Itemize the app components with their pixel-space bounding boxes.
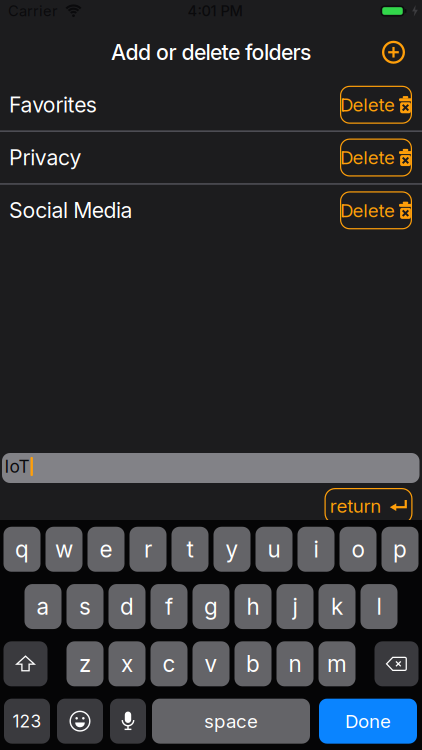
staticText: t (186, 536, 193, 563)
staticText: 4:01 PM (187, 2, 242, 20)
button[interactable]: d (108, 584, 145, 629)
button[interactable]: Delete folder (340, 139, 412, 177)
button[interactable]: n (276, 641, 313, 686)
staticText: Delete (340, 94, 395, 116)
staticText: d (120, 593, 134, 620)
button[interactable]: c (150, 641, 187, 686)
button[interactable]: u (255, 527, 292, 572)
staticText: 123 (12, 711, 41, 731)
button[interactable]: e (87, 527, 124, 572)
staticText: p (393, 536, 407, 563)
button[interactable]: v (192, 641, 229, 686)
staticText: x (121, 650, 133, 677)
button[interactable]: w (45, 527, 82, 572)
staticText: r (144, 536, 152, 563)
staticText: Social Media (9, 198, 133, 223)
staticText: n (288, 650, 301, 677)
button[interactable]: Delete character (374, 641, 418, 686)
button[interactable]: t (171, 527, 208, 572)
staticText: m (327, 650, 347, 677)
staticText: Delete (340, 146, 395, 168)
staticText: w (55, 536, 73, 563)
staticText: l (376, 593, 381, 620)
button[interactable]: a (24, 584, 61, 629)
staticText: f (165, 593, 173, 620)
staticText: y (225, 536, 238, 563)
button[interactable]: return (324, 488, 412, 524)
staticText: j (292, 593, 297, 620)
button[interactable]: k (318, 584, 355, 629)
staticText: b (246, 650, 260, 677)
staticText: h (246, 593, 259, 620)
button[interactable]: Delete folder (340, 191, 412, 229)
button[interactable]: r (129, 527, 166, 572)
staticText: return (330, 495, 381, 517)
button[interactable]: Add folder (382, 41, 405, 64)
staticText: Carrier (8, 2, 58, 20)
staticText: o (351, 536, 364, 563)
button[interactable]: x (108, 641, 145, 686)
button[interactable]: Folder name text field (2, 453, 419, 483)
button[interactable]: y (213, 527, 250, 572)
staticText: Favorites (9, 92, 97, 117)
staticText: g (204, 593, 218, 620)
button[interactable]: o (339, 527, 376, 572)
staticText: IoT (4, 456, 29, 477)
button[interactable]: g (192, 584, 229, 629)
staticText: Delete (340, 199, 395, 221)
button[interactable]: Shift (3, 641, 47, 686)
button[interactable]: p (381, 527, 418, 572)
staticText: a (36, 593, 49, 620)
staticText: Done (345, 710, 391, 732)
staticText: s (79, 593, 91, 620)
button[interactable]: m (318, 641, 355, 686)
button[interactable]: b (234, 641, 271, 686)
staticText: u (267, 536, 280, 563)
button[interactable]: s (66, 584, 103, 629)
button[interactable]: j (276, 584, 313, 629)
staticText: Add or delete folders (111, 40, 311, 65)
button[interactable]: Numbers (4, 699, 50, 744)
button[interactable]: space (152, 699, 310, 744)
staticText: i (313, 536, 318, 563)
button[interactable]: Emoji (57, 699, 103, 744)
staticText: v (204, 650, 217, 677)
button[interactable]: h (234, 584, 271, 629)
button[interactable]: Dictation (110, 699, 146, 744)
button[interactable]: l (360, 584, 397, 629)
staticText: q (15, 536, 29, 563)
button[interactable]: f (150, 584, 187, 629)
staticText: k (331, 593, 343, 620)
staticText: z (79, 650, 91, 677)
button[interactable]: z (66, 641, 103, 686)
button[interactable]: q (3, 527, 40, 572)
button[interactable]: Delete folder (340, 86, 412, 124)
staticText: Privacy (9, 145, 82, 170)
staticText: e (99, 536, 112, 563)
staticText: c (162, 650, 175, 677)
button[interactable]: Done (319, 699, 417, 744)
button[interactable]: i (297, 527, 334, 572)
staticText: space (204, 710, 258, 732)
